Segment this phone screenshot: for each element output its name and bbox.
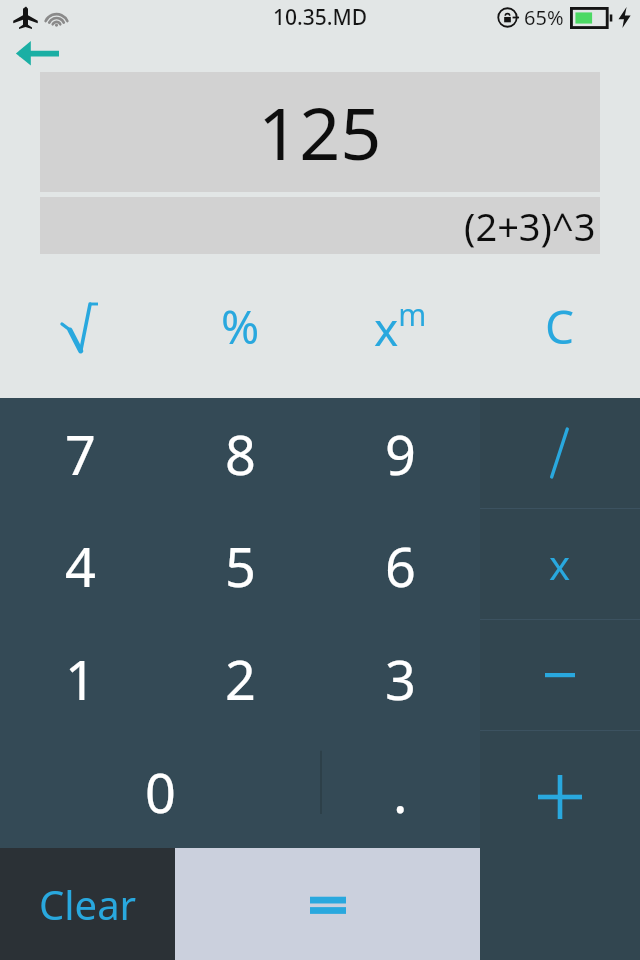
staticText: 2 bbox=[225, 642, 256, 716]
button[interactable]: 6 bbox=[320, 510, 480, 622]
staticText: 125 bbox=[258, 83, 382, 181]
button[interactable]: 5 bbox=[160, 510, 320, 622]
button[interactable]: 9 bbox=[320, 398, 480, 510]
button[interactable]: Back bbox=[10, 35, 64, 71]
button[interactable]: Power bbox=[320, 254, 480, 398]
button[interactable]: Clear bbox=[0, 848, 175, 960]
staticText: 4 bbox=[65, 529, 96, 603]
button[interactable]: Add bbox=[480, 731, 640, 960]
staticText: 10.35.MD bbox=[273, 3, 368, 32]
staticText: 6 bbox=[385, 529, 416, 603]
staticText: xm bbox=[374, 294, 427, 359]
staticText: % bbox=[221, 295, 260, 358]
staticText: 3 bbox=[385, 642, 416, 716]
staticText: Clear bbox=[39, 877, 137, 931]
staticText: 7 bbox=[65, 417, 96, 491]
button[interactable]: 2 bbox=[160, 622, 320, 735]
button[interactable]: . bbox=[320, 735, 480, 848]
staticText: (2+3)^3 bbox=[464, 200, 596, 252]
button[interactable]: Square root bbox=[0, 254, 160, 398]
button[interactable]: 125 bbox=[40, 72, 600, 192]
button[interactable]: Subtract bbox=[480, 620, 640, 730]
staticText: 1 bbox=[65, 642, 96, 716]
button[interactable]: Divide bbox=[480, 398, 640, 508]
staticText: 0 bbox=[145, 755, 176, 829]
button[interactable]: 3 bbox=[320, 622, 480, 735]
button[interactable]: Percent bbox=[160, 254, 320, 398]
button[interactable]: Clear entry bbox=[480, 254, 640, 398]
staticText: C bbox=[545, 295, 575, 358]
button[interactable]: 4 bbox=[0, 510, 160, 622]
staticText: 8 bbox=[225, 417, 256, 491]
button[interactable]: 8 bbox=[160, 398, 320, 510]
staticText: 5 bbox=[225, 529, 256, 603]
button[interactable]: 7 bbox=[0, 398, 160, 510]
button[interactable]: 0 bbox=[0, 735, 320, 848]
button[interactable]: Multiply bbox=[480, 509, 640, 619]
button[interactable]: (2+3)^3 bbox=[40, 197, 600, 254]
staticText: 9 bbox=[385, 417, 416, 491]
button[interactable] bbox=[175, 848, 480, 960]
staticText: . bbox=[393, 755, 408, 829]
button[interactable]: 1 bbox=[0, 622, 160, 735]
staticText: 65% bbox=[524, 4, 564, 31]
staticText: x bbox=[549, 537, 571, 591]
